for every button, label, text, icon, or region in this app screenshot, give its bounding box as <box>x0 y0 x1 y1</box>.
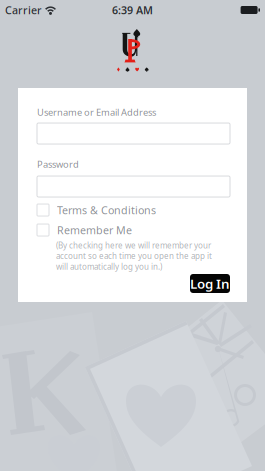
staticText: Password <box>37 158 79 170</box>
staticText: Username or Email Address <box>37 106 156 118</box>
button[interactable]: Remember Me <box>37 223 228 237</box>
button[interactable]: Terms & Conditions <box>37 203 228 217</box>
staticText: (By checking here we will remember your … <box>56 240 212 272</box>
staticText: 6:39 AM <box>112 3 153 17</box>
staticText: Log In <box>190 275 230 292</box>
staticText: Remember Me <box>57 223 132 237</box>
staticText: Terms & Conditions <box>57 203 156 217</box>
staticText: Carrier <box>5 3 42 17</box>
button[interactable]: Log In <box>190 274 230 293</box>
